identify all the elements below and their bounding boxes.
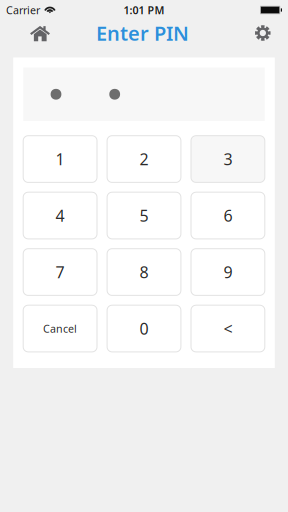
button[interactable]: 4: [23, 192, 97, 239]
button[interactable]: 9: [191, 249, 265, 295]
button[interactable]: Cancel: [23, 305, 97, 352]
staticText: 1:01 PM: [123, 3, 164, 17]
button[interactable]: Home: [20, 20, 60, 49]
button[interactable]: Settings: [243, 20, 283, 49]
staticText: 6: [223, 205, 232, 226]
staticText: Cancel: [43, 321, 77, 336]
staticText: 9: [223, 261, 232, 283]
staticText: 2: [139, 148, 148, 170]
staticText: <: [223, 318, 232, 339]
button[interactable]: 8: [107, 249, 181, 295]
staticText: Enter PIN: [96, 20, 189, 46]
button[interactable]: 3: [191, 136, 265, 182]
button[interactable]: 0: [107, 305, 181, 352]
button[interactable]: 2: [107, 136, 181, 182]
button[interactable]: 6: [191, 192, 265, 239]
button[interactable]: 5: [107, 192, 181, 239]
staticText: 5: [139, 205, 148, 226]
staticText: 0: [139, 318, 148, 339]
staticText: 7: [56, 261, 65, 283]
staticText: Carrier: [6, 3, 40, 17]
staticText: 3: [223, 148, 232, 170]
button[interactable]: 7: [23, 249, 97, 295]
staticText: 4: [56, 205, 65, 226]
button[interactable]: <: [191, 305, 265, 352]
button[interactable]: 1: [23, 136, 97, 182]
staticText: 8: [139, 261, 148, 283]
staticText: 1: [56, 148, 65, 170]
